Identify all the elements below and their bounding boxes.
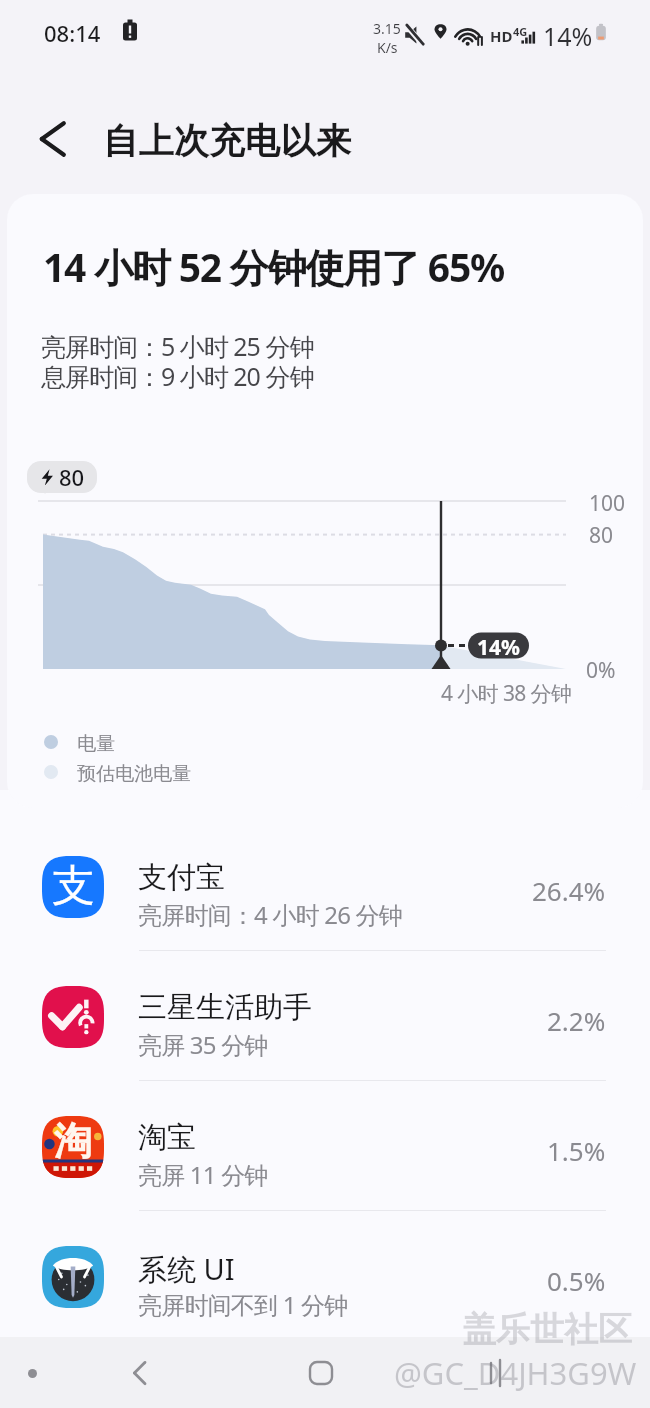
staticText: 息屏时间：9 小时 20 分钟: [41, 359, 314, 393]
staticText: 14 小时 52 分钟使用了 65%: [43, 240, 504, 293]
staticText: 80: [589, 521, 614, 550]
staticText: 2.2%: [547, 1003, 606, 1038]
button[interactable]: 系统 UI: [0, 1212, 650, 1342]
button[interactable]: 淘: [0, 1082, 650, 1212]
staticText: 80: [59, 462, 85, 492]
button[interactable]: Back: [114, 1347, 166, 1399]
button[interactable]: Back: [26, 110, 84, 168]
staticText: 0%: [586, 656, 616, 685]
staticText: K/s: [377, 38, 398, 57]
staticText: 亮屏时间不到 1 分钟: [138, 1288, 348, 1321]
staticText: 08:14: [44, 18, 101, 48]
staticText: 亮屏 35 分钟: [138, 1028, 268, 1061]
staticText: 三星生活助手: [138, 989, 312, 1026]
staticText: 26.4%: [532, 873, 606, 908]
staticText: 0.5%: [547, 1263, 606, 1298]
staticText: @GC_D4JH3G9W: [394, 1352, 637, 1394]
button[interactable]: Menu indicator: [10, 1351, 54, 1395]
staticText: 亮屏时间：5 小时 25 分钟: [41, 329, 314, 363]
staticText: 自上次充电以来: [103, 119, 352, 163]
staticText: 电量: [77, 732, 115, 756]
staticText: 支付宝: [138, 859, 225, 896]
staticText: 淘: [54, 1117, 92, 1165]
staticText: 4G: [513, 24, 528, 39]
button[interactable]: Home: [295, 1347, 347, 1399]
staticText: 淘宝: [138, 1119, 196, 1156]
staticText: HD: [490, 26, 513, 46]
staticText: 3.15: [373, 19, 401, 38]
button[interactable]: 支: [0, 822, 650, 952]
staticText: 支: [52, 859, 95, 913]
staticText: 盖乐世社区: [462, 1308, 632, 1351]
staticText: 预估电池电量: [77, 762, 191, 786]
staticText: 14%: [543, 19, 593, 53]
button[interactable]: 三星生活助手: [0, 952, 650, 1082]
staticText: 系统 UI: [138, 1249, 235, 1289]
staticText: 1.5%: [547, 1133, 606, 1168]
staticText: 100: [589, 489, 626, 518]
staticText: 亮屏时间：4 小时 26 分钟: [138, 898, 402, 931]
staticText: 亮屏 11 分钟: [138, 1158, 268, 1191]
staticText: 4 小时 38 分钟: [441, 679, 572, 708]
staticText: 14%: [477, 633, 520, 662]
button[interactable]: Recents: [474, 1347, 526, 1399]
